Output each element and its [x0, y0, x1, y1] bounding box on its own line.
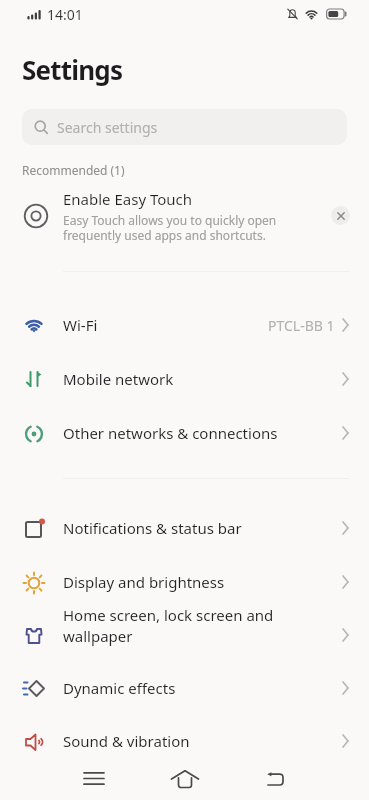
button[interactable]: Home screen, lock screen and wallpaper [0, 609, 369, 661]
staticText: Enable Easy Touch [63, 189, 193, 209]
staticText: Settings [22, 52, 123, 87]
staticText: Search settings [57, 118, 158, 137]
button[interactable]: Mobile network [0, 352, 369, 406]
button[interactable]: Notifications & status bar [0, 501, 369, 555]
button[interactable]: Wi-Fi [0, 298, 369, 352]
staticText: PTCL-BB 1 [268, 316, 335, 335]
staticText: Easy Touch allows you to quickly open fr… [63, 212, 277, 243]
button[interactable]: Sound & vibration [0, 714, 369, 768]
button[interactable] [139, 768, 230, 789]
button[interactable]: Other networks & connections [0, 406, 369, 460]
staticText: Home screen, lock screen and wallpaper [63, 605, 342, 647]
staticText: Recommended (1) [22, 162, 125, 178]
button[interactable] [48, 768, 139, 789]
button[interactable]: Enable Easy Touch [0, 187, 369, 251]
button[interactable] [331, 206, 350, 225]
staticText: Display and brightness [63, 572, 342, 592]
staticText: 14:01 [47, 5, 83, 24]
staticText: Sound & vibration [63, 731, 342, 751]
button[interactable]: Dynamic effects [0, 661, 369, 714]
staticText: Notifications & status bar [63, 518, 342, 538]
staticText: Other networks & connections [63, 423, 342, 443]
staticText: Wi-Fi [63, 315, 268, 335]
staticText: Mobile network [63, 369, 342, 389]
button[interactable]: Display and brightness [0, 555, 369, 609]
staticText: Dynamic effects [63, 678, 342, 698]
button[interactable]: Search settings [22, 109, 347, 145]
button[interactable] [230, 768, 321, 789]
